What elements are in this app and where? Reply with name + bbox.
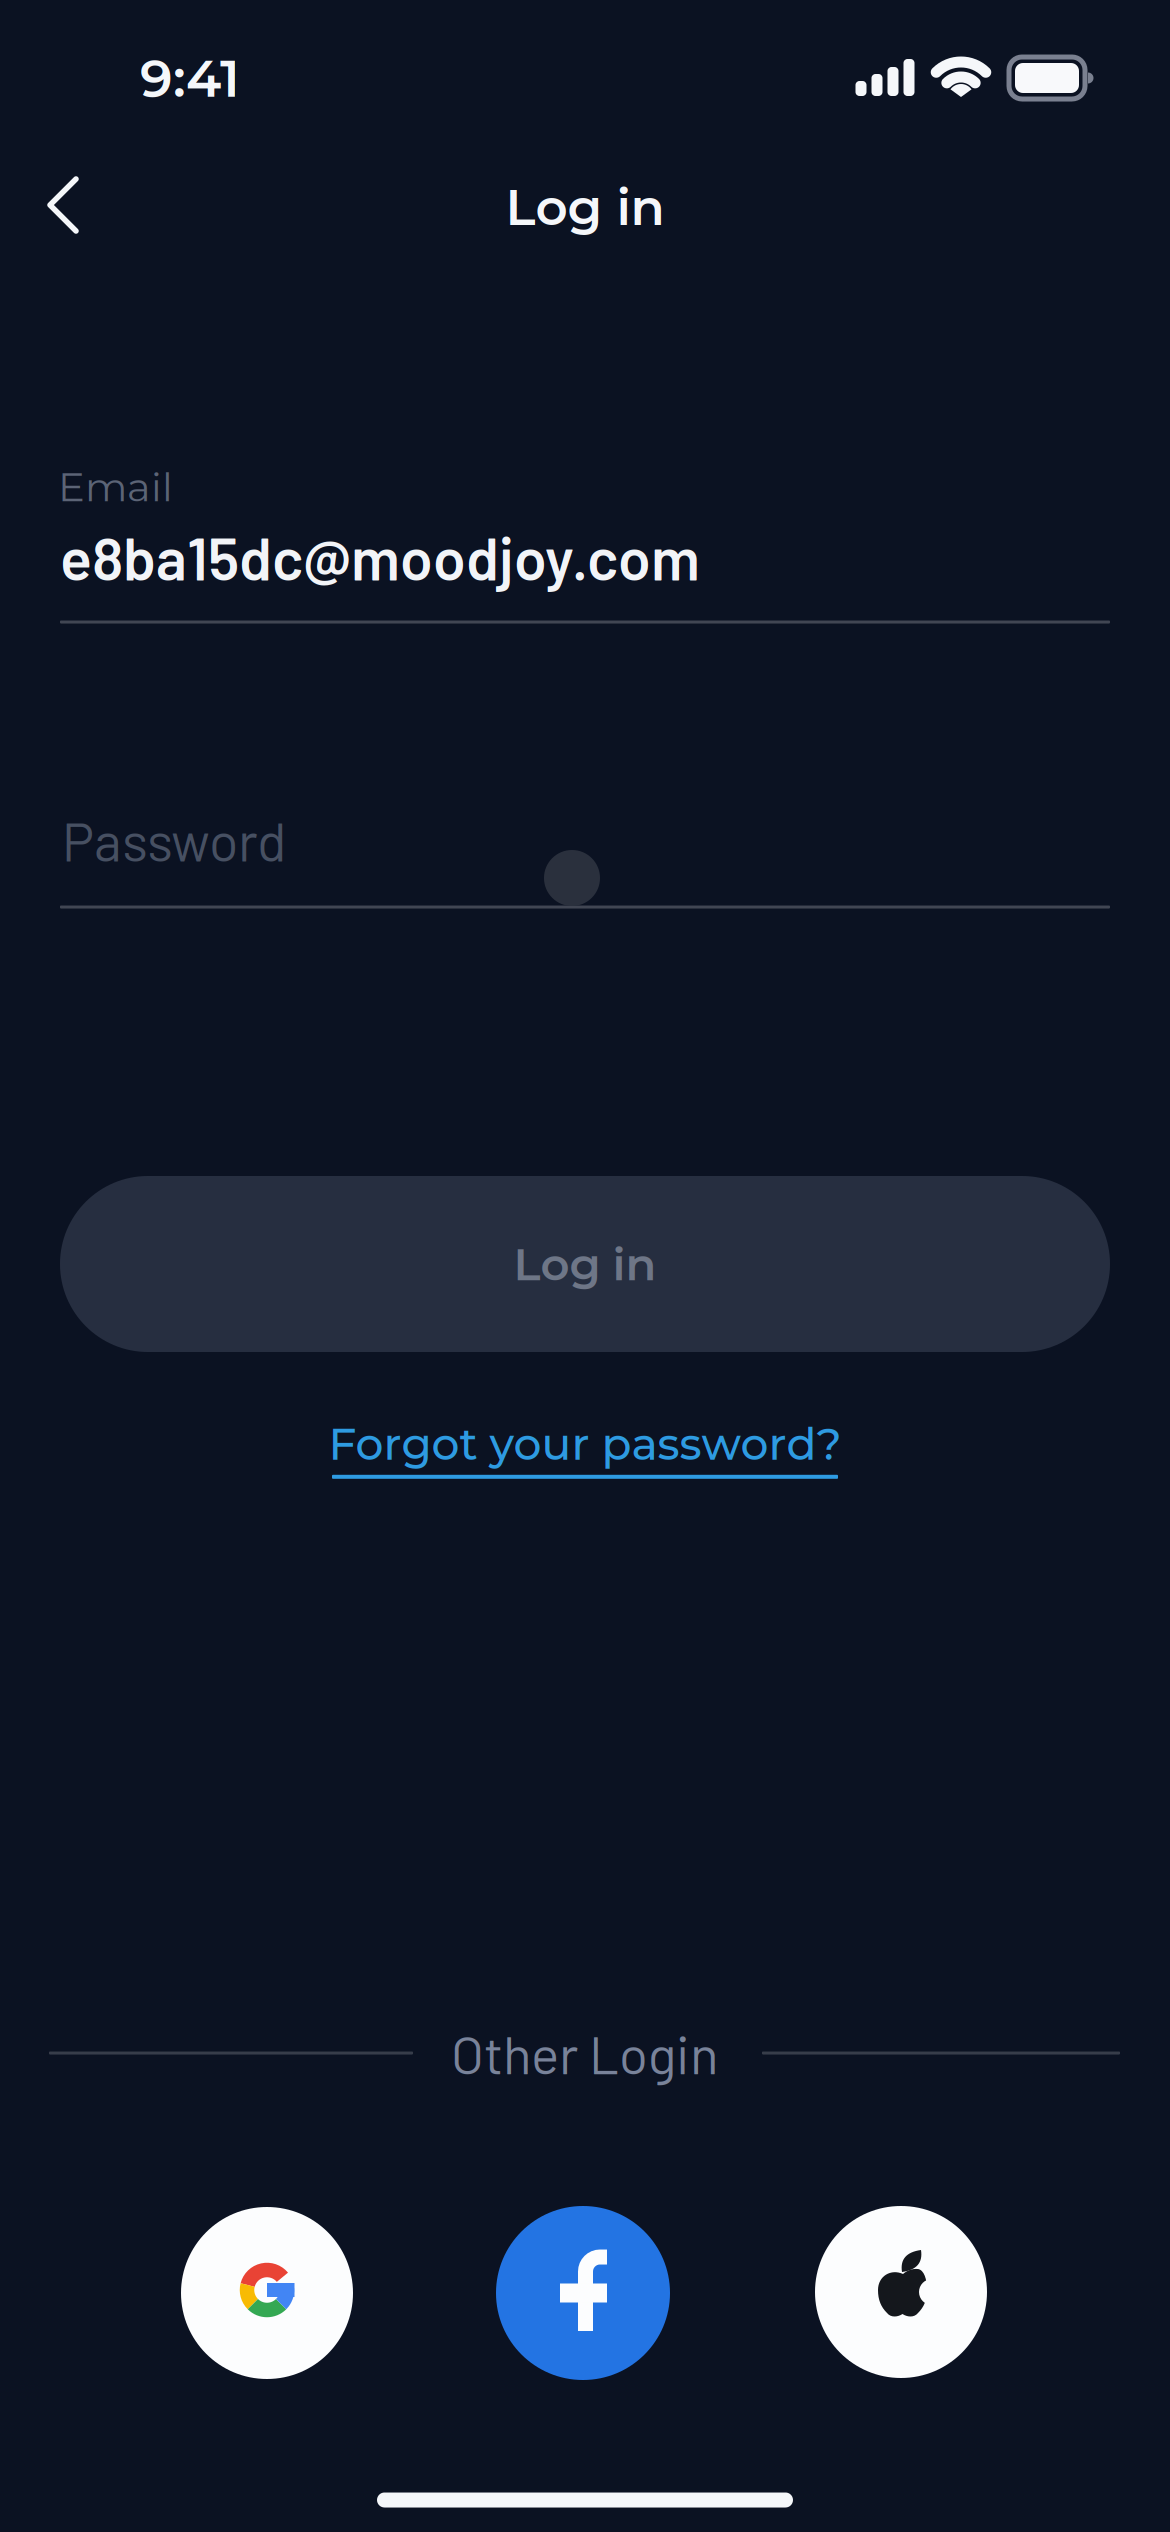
button[interactable]: Log in with Google (181, 2207, 353, 2379)
button[interactable]: Log in (60, 1176, 1110, 1352)
button[interactable]: Forgot your password? (328, 1417, 841, 1479)
staticText: Log in (505, 176, 664, 237)
staticText: Forgot your password? (328, 1417, 841, 1471)
staticText: Log in (513, 1237, 656, 1291)
button[interactable]: Log in with Apple (815, 2206, 987, 2378)
staticText: Password (62, 808, 286, 872)
staticText: Other Login (451, 2021, 719, 2085)
button[interactable]: Email (60, 463, 1110, 625)
button[interactable]: Password (60, 815, 1110, 910)
button[interactable]: Back (29, 171, 97, 239)
button[interactable]: Log in with Facebook (496, 2206, 670, 2380)
staticText: 9:41 (140, 46, 240, 110)
staticText: e8ba15dc@moodjoy.com (60, 522, 700, 592)
staticText: Email (58, 463, 173, 511)
